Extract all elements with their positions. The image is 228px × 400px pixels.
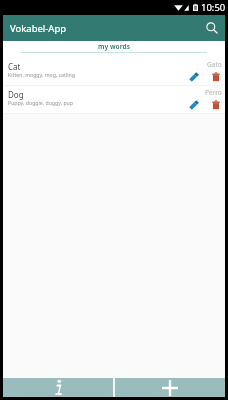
staticText: Gato	[207, 60, 222, 69]
button[interactable]: Delete	[210, 99, 221, 111]
button[interactable]: Cat	[3, 58, 225, 86]
button[interactable]: Edit	[187, 71, 200, 83]
staticText: Perro	[205, 88, 222, 97]
button[interactable]: my words	[3, 41, 225, 52]
staticText: Vokabel-App	[10, 22, 67, 35]
button[interactable]: Delete	[210, 71, 221, 83]
button[interactable]: Dog	[3, 86, 225, 114]
staticText: Dog	[8, 89, 24, 100]
button[interactable]: Search	[204, 20, 220, 36]
button[interactable]: Edit	[187, 99, 200, 111]
staticText: 10:50	[201, 1, 226, 14]
staticText: Kitten, moggy, mog, catling	[8, 71, 75, 78]
staticText: my words	[98, 42, 130, 51]
button[interactable]: Info	[3, 378, 113, 397]
staticText: Puppy, doggie, doggy, pup	[8, 99, 73, 106]
button[interactable]: Add	[115, 378, 225, 397]
staticText: Cat	[8, 61, 21, 72]
